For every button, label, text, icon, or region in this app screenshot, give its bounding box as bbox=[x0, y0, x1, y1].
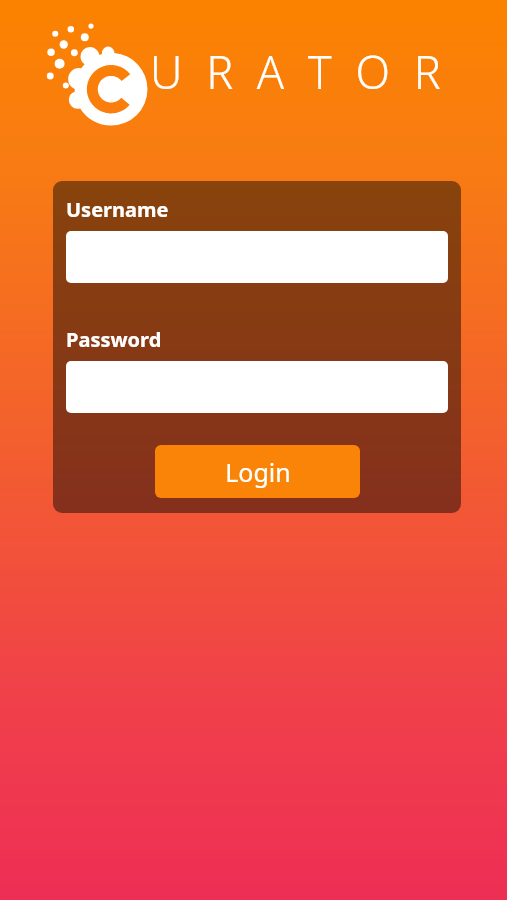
staticText: Password bbox=[66, 326, 162, 353]
button[interactable]: Username input field bbox=[66, 231, 448, 283]
button[interactable]: Login bbox=[155, 445, 360, 498]
other: Curator logo bbox=[44, 19, 148, 123]
button[interactable]: Password input field bbox=[66, 361, 448, 413]
staticText: U R A T O R bbox=[150, 41, 447, 102]
staticText: Username bbox=[66, 196, 169, 223]
staticText: Login bbox=[225, 455, 291, 489]
